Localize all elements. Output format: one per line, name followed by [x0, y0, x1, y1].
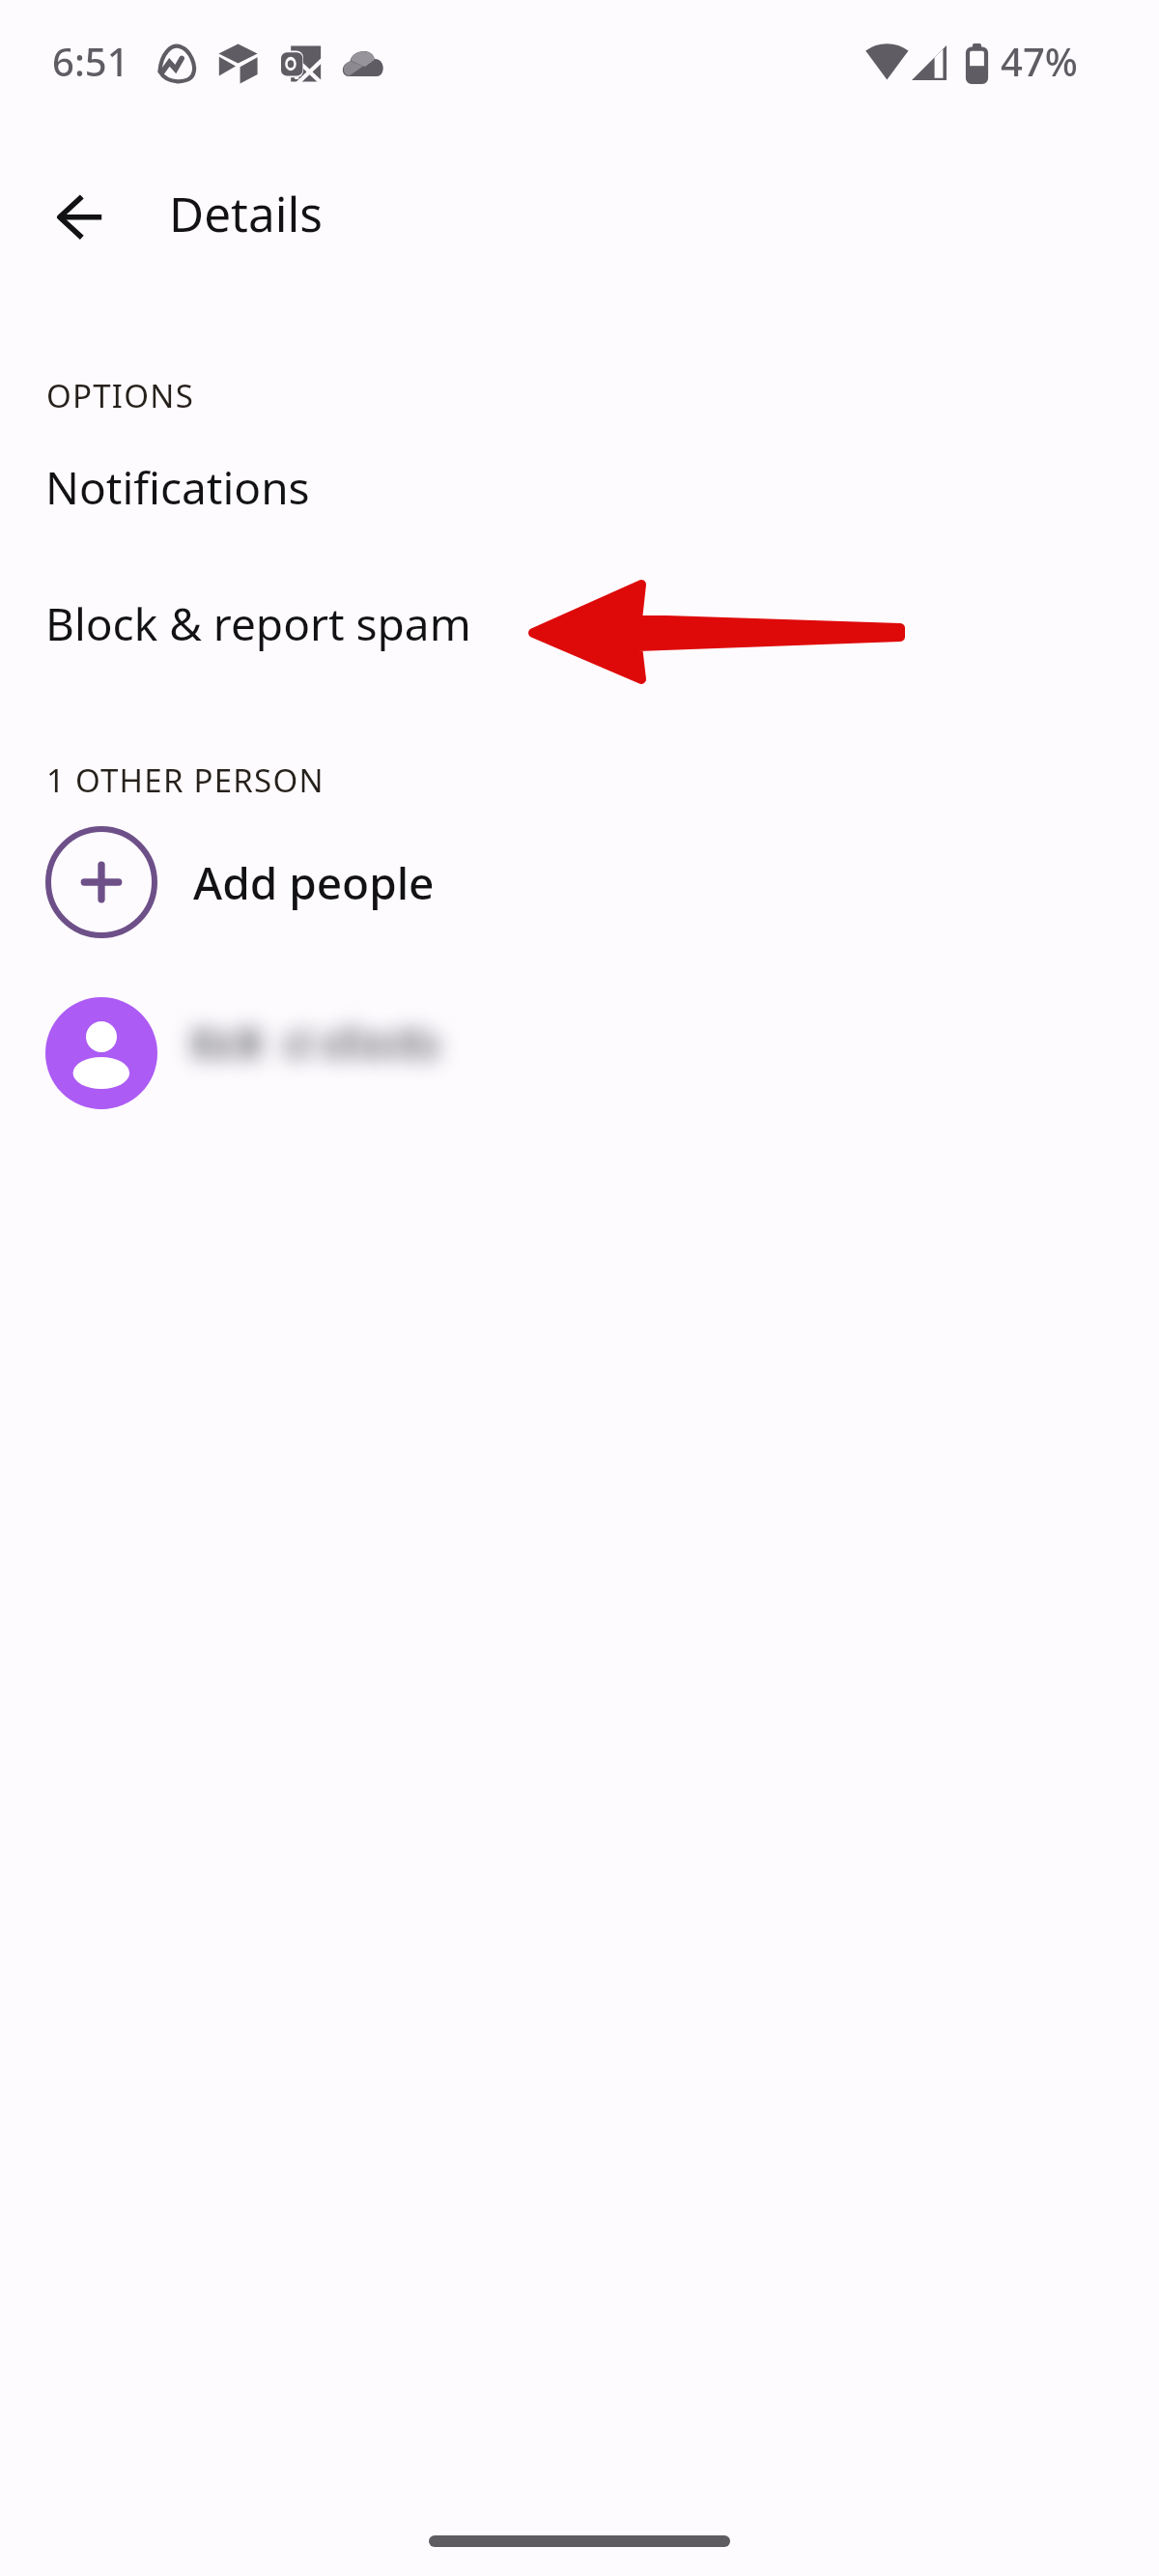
button[interactable]: Add people [0, 815, 1159, 950]
button[interactable]: Notifications [0, 435, 1159, 539]
button[interactable] [0, 986, 1159, 1121]
button[interactable]: Block & report spam [0, 571, 1159, 675]
staticText: 1 OTHER PERSON [46, 758, 325, 802]
staticText: Notifications [45, 457, 310, 518]
button[interactable]: Back [10, 147, 149, 286]
staticText: 6:51 [52, 35, 129, 87]
staticText: Add people [193, 852, 435, 913]
staticText: 47% [1001, 35, 1078, 87]
staticText: Block & report spam [45, 593, 471, 654]
staticText: OPTIONS [46, 374, 194, 417]
staticText: Details [169, 181, 323, 245]
